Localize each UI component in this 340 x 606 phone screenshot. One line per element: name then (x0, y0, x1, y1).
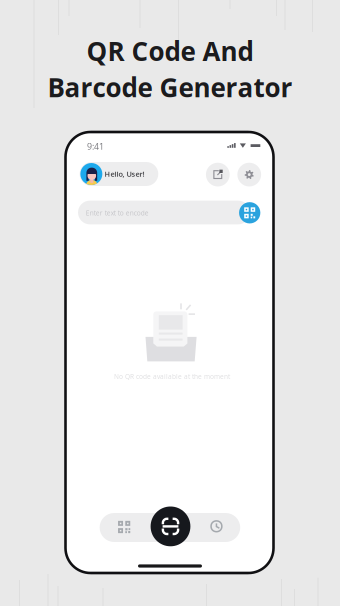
staticText: Hello, User! (104, 169, 144, 179)
staticText: 9:41 (87, 140, 104, 152)
staticText: QR Code And (86, 33, 253, 68)
button[interactable]: Settings (237, 163, 261, 186)
staticText: Enter text to encode (86, 208, 149, 217)
button[interactable]: Share (206, 163, 230, 186)
button[interactable]: QR codes (105, 512, 143, 541)
button[interactable]: Hello, User! (80, 162, 158, 186)
button[interactable]: Generate QR code (239, 202, 260, 223)
button[interactable]: History (197, 512, 235, 541)
staticText: No QR code available at the moment (114, 372, 230, 381)
staticText: Barcode Generator (47, 69, 292, 105)
button[interactable]: Scan (151, 506, 190, 546)
